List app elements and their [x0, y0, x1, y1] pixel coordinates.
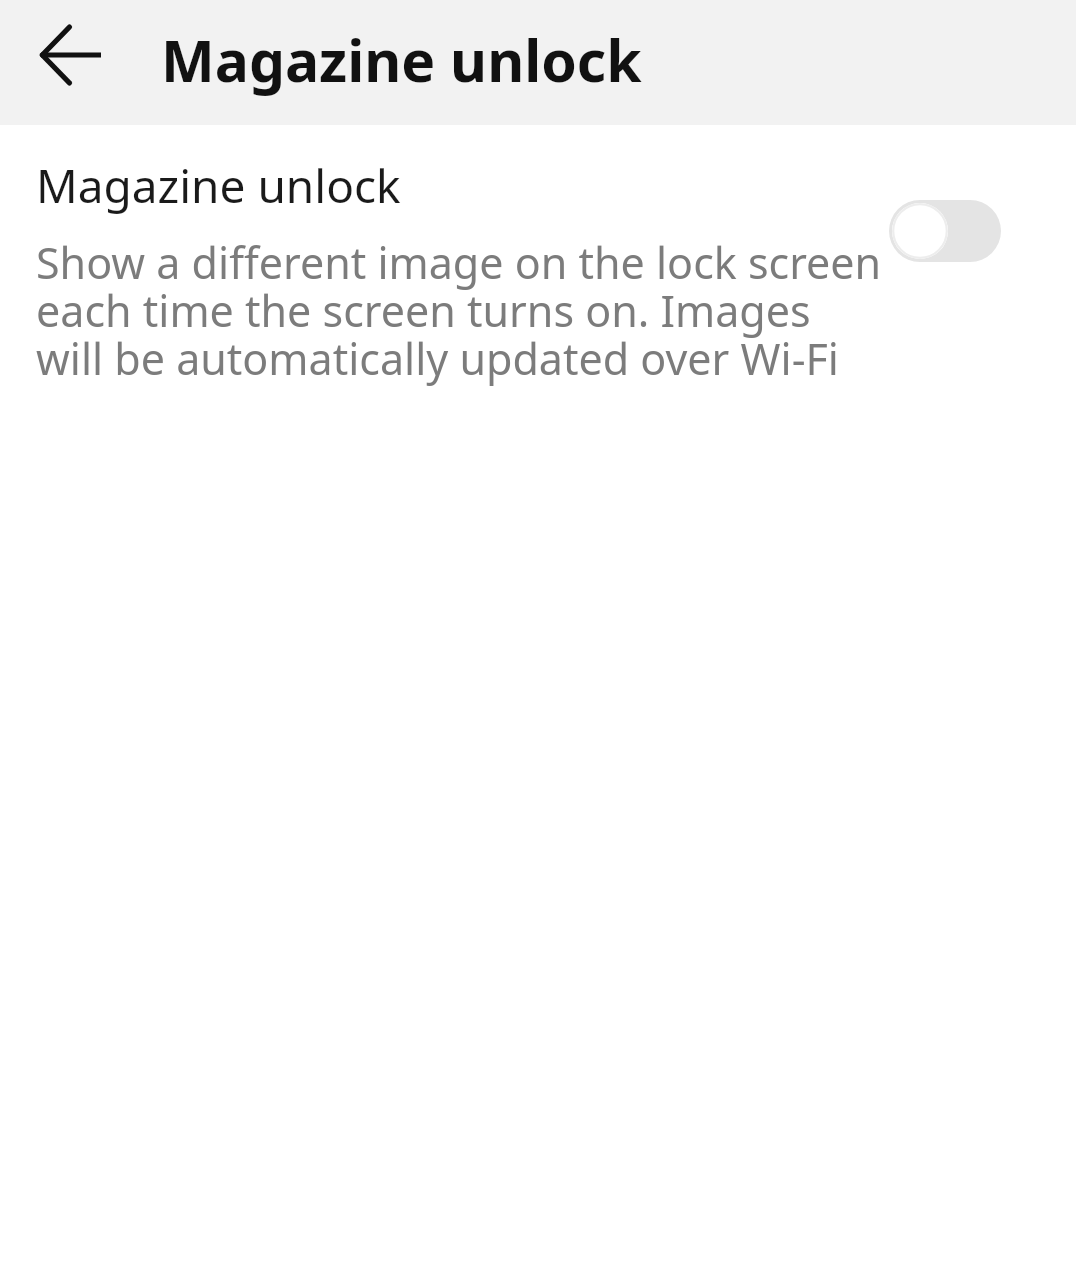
- button[interactable]: Back: [17, 1, 125, 109]
- button[interactable]: Magazine unlock: [0, 125, 1076, 411]
- staticText: Show a different image on the lock scree…: [36, 233, 888, 387]
- staticText: Magazine unlock: [161, 21, 642, 99]
- button[interactable]: Magazine unlock toggle, off: [889, 199, 1001, 263]
- staticText: Magazine unlock: [36, 154, 401, 217]
